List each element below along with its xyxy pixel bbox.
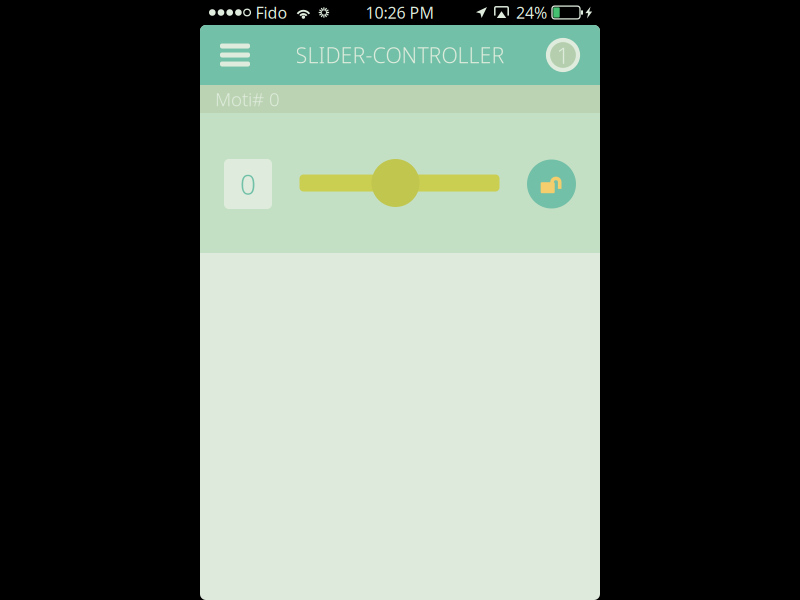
button[interactable]: 0 [224, 159, 272, 209]
button[interactable]: Unlock [527, 159, 576, 208]
button[interactable]: Menu [213, 31, 257, 79]
staticText: Fido [255, 2, 287, 23]
staticText: SLIDER-CONTROLLER [295, 41, 504, 69]
staticText: Moti# 0 [215, 87, 280, 111]
staticText: 24% [516, 2, 547, 23]
staticText: 1 [556, 40, 569, 70]
staticText: 10:26 PM [365, 2, 434, 23]
button[interactable]: Device 1 [541, 31, 585, 79]
staticText: 0 [240, 165, 256, 203]
button[interactable]: Motor 0 value slider [299, 159, 499, 207]
